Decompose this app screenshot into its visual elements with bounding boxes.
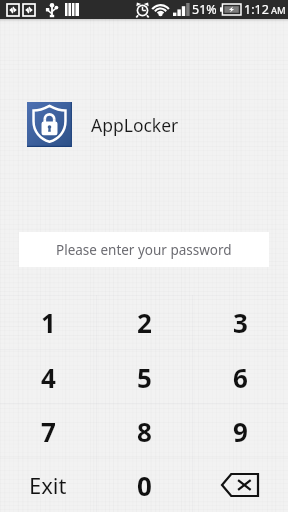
staticText: 1:12 bbox=[244, 1, 269, 18]
staticText: 4 bbox=[41, 360, 56, 395]
staticText: 51% bbox=[192, 1, 217, 18]
button[interactable]: Exit bbox=[0, 458, 96, 512]
staticText: 6 bbox=[233, 360, 248, 395]
button[interactable]: Please enter your password bbox=[19, 232, 269, 267]
staticText: 1 bbox=[41, 305, 56, 340]
button[interactable]: 0 bbox=[96, 458, 192, 512]
button[interactable]: 1 bbox=[0, 295, 96, 350]
staticText: 5 bbox=[137, 360, 152, 395]
staticText: 3 bbox=[233, 305, 248, 340]
button[interactable]: 7 bbox=[0, 404, 96, 458]
other: AppLocker icon bbox=[27, 102, 72, 147]
staticText: 7 bbox=[41, 414, 56, 449]
staticText: 2 bbox=[137, 305, 152, 340]
button[interactable]: 4 bbox=[0, 350, 96, 404]
staticText: 0 bbox=[137, 468, 152, 503]
button[interactable]: 8 bbox=[96, 404, 192, 458]
button[interactable]: 9 bbox=[192, 404, 288, 458]
button[interactable]: 2 bbox=[96, 295, 192, 350]
staticText: AM bbox=[271, 4, 286, 17]
button[interactable]: 6 bbox=[192, 350, 288, 404]
other: Battery charging bbox=[220, 4, 241, 15]
staticText: Please enter your password bbox=[56, 241, 232, 259]
staticText: Exit bbox=[29, 470, 67, 500]
button[interactable]: 5 bbox=[96, 350, 192, 404]
staticText: 8 bbox=[137, 414, 152, 449]
staticText: AppLocker bbox=[91, 113, 179, 137]
button[interactable]: 3 bbox=[192, 295, 288, 350]
button[interactable]: Backspace bbox=[192, 458, 288, 512]
staticText: 9 bbox=[233, 414, 248, 449]
